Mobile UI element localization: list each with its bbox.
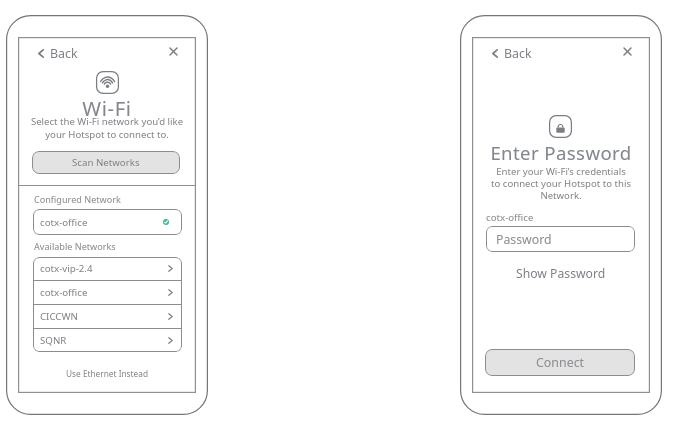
- staticText: Connect: [536, 354, 585, 371]
- staticText: Select the Wi-Fi network you’d like your…: [18, 115, 196, 141]
- staticText: Password: [496, 231, 552, 248]
- button[interactable]: CICCWN: [33, 305, 182, 328]
- button[interactable]: Connect: [485, 349, 635, 376]
- staticText: Back: [504, 45, 532, 62]
- staticText: CICCWN: [40, 310, 78, 323]
- staticText: Scan Networks: [72, 156, 140, 169]
- staticText: Show Password: [516, 265, 606, 282]
- staticText: Enter Password: [472, 140, 650, 165]
- button[interactable]: cotx-office: [33, 281, 182, 304]
- button[interactable]: Back: [36, 40, 80, 67]
- staticText: Available Networks: [34, 240, 116, 252]
- staticText: SQNR: [40, 334, 67, 347]
- staticText: Enter your Wi-Fi’s credentials to connec…: [472, 165, 650, 202]
- button[interactable]: Password: [486, 226, 635, 252]
- staticText: Configured Network: [34, 193, 121, 205]
- button[interactable]: Back: [490, 40, 534, 67]
- staticText: cotx-office: [486, 211, 534, 224]
- staticText: Back: [50, 45, 78, 62]
- button[interactable]: Close: [618, 42, 637, 61]
- staticText: Use Ethernet Instead: [66, 368, 149, 379]
- button[interactable]: SQNR: [33, 329, 182, 352]
- button[interactable]: Scan Networks: [32, 151, 180, 174]
- button[interactable]: cotx-office: [33, 209, 182, 235]
- button[interactable]: Close: [164, 42, 183, 61]
- staticText: cotx-office: [40, 216, 88, 229]
- staticText: cotx-vip-2.4: [40, 262, 93, 275]
- button[interactable]: Use Ethernet Instead: [18, 366, 196, 381]
- button[interactable]: Show Password: [472, 265, 650, 282]
- staticText: cotx-office: [40, 286, 88, 299]
- button[interactable]: cotx-vip-2.4: [33, 257, 182, 280]
- staticText: Wi-Fi: [18, 94, 196, 122]
